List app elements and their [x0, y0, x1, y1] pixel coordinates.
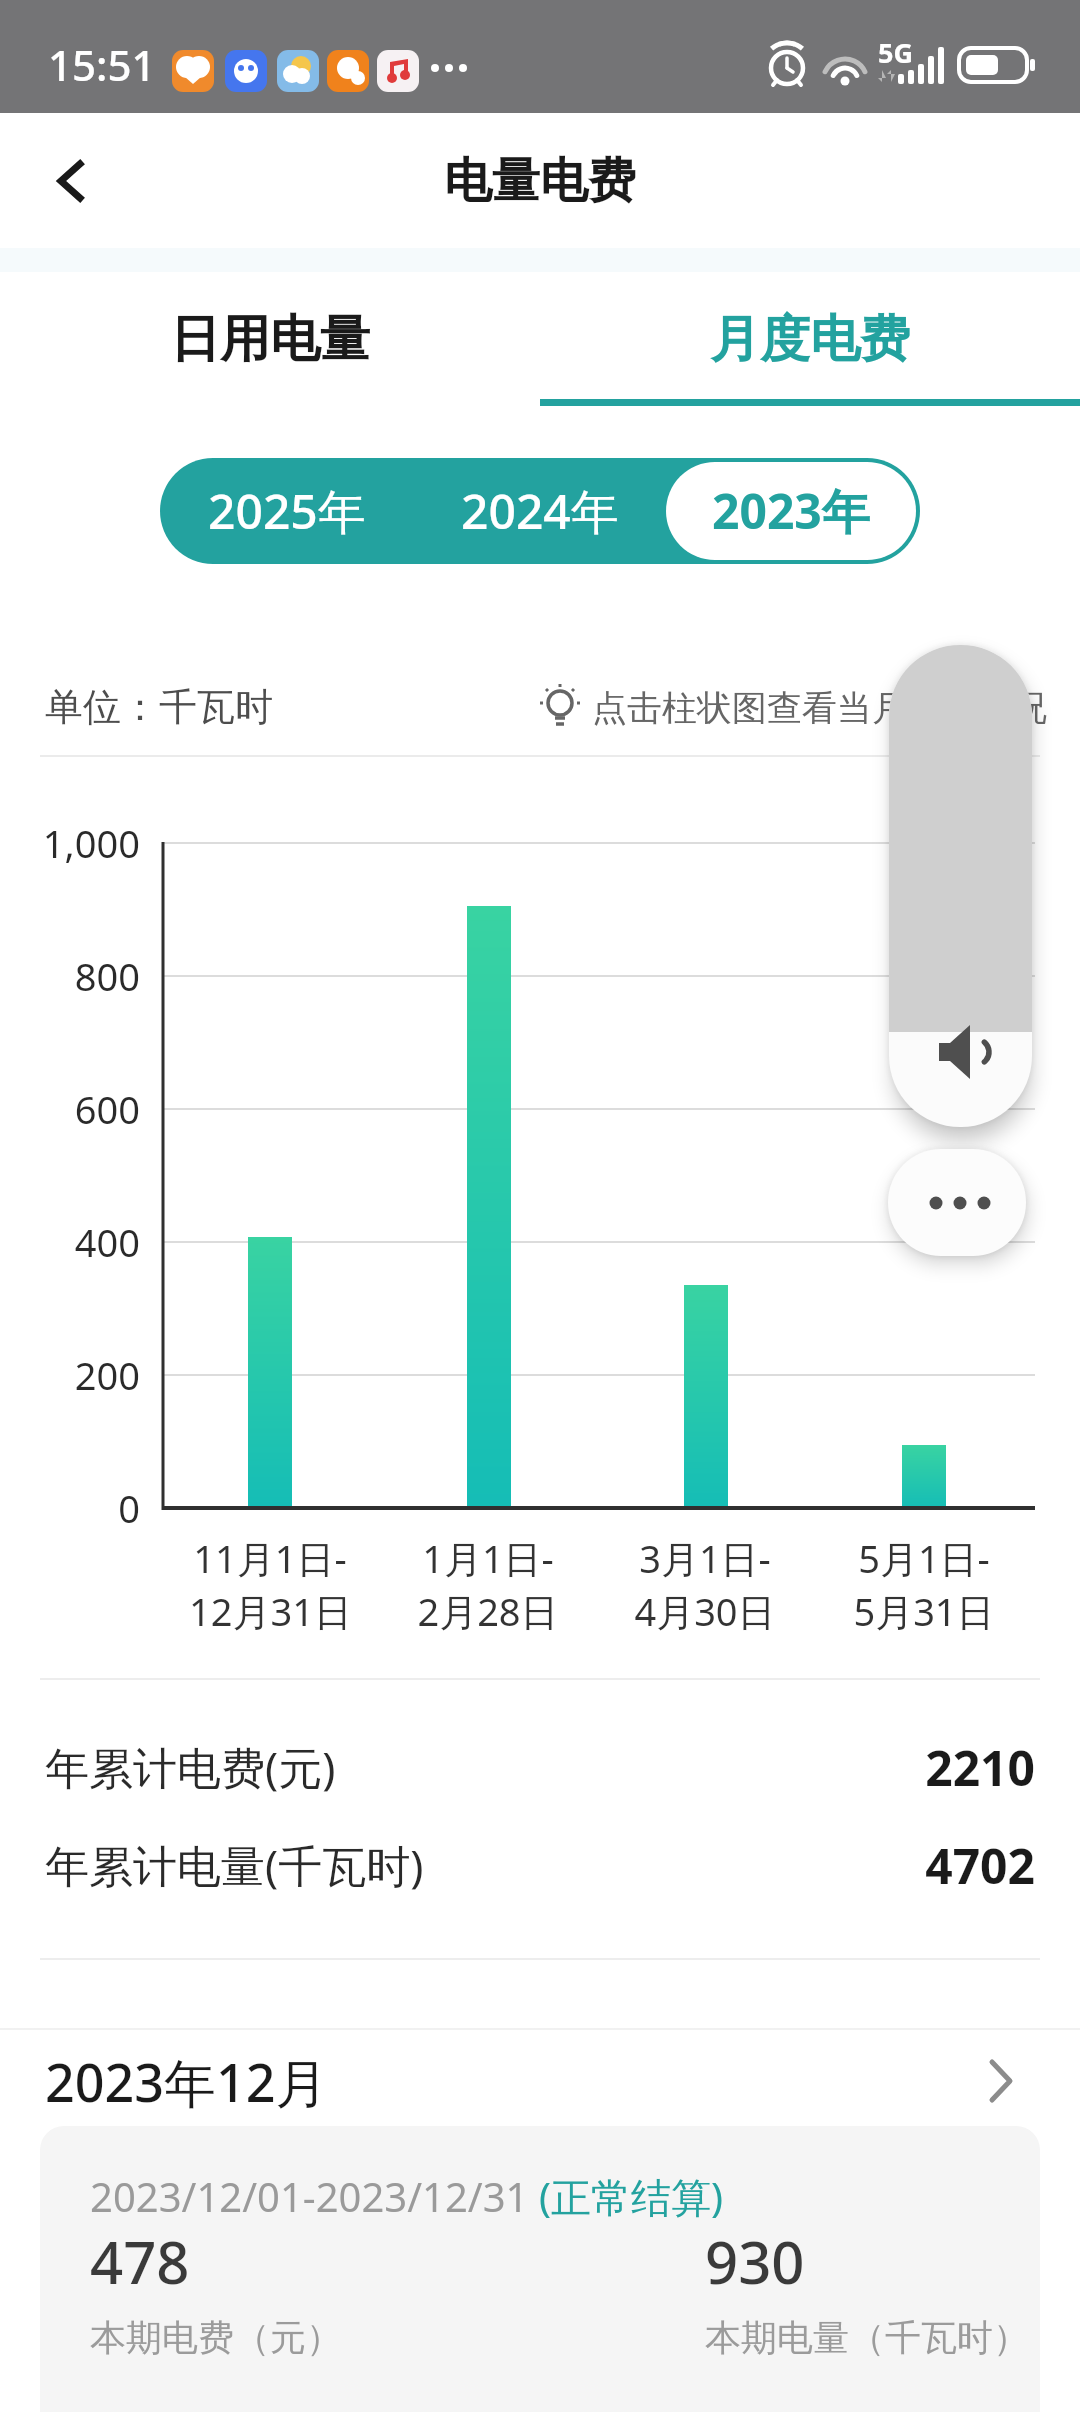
staticText: 4702	[0, 1833, 1035, 1898]
staticText: 800	[0, 950, 140, 1002]
button[interactable]: 日用电量	[0, 272, 540, 406]
staticText: 2023/12/01-2023/12/31	[90, 2169, 539, 2223]
staticText: 1,000	[0, 817, 140, 869]
staticText: 1月1日-	[422, 1532, 554, 1584]
staticText: 11月1日-	[193, 1532, 347, 1584]
staticText: 5月31日	[853, 1585, 995, 1637]
staticText: 930	[705, 2222, 805, 2301]
staticText: (正常结算)	[539, 2169, 723, 2224]
staticText: 478	[90, 2222, 190, 2301]
staticText: 2023年12月	[45, 2046, 328, 2117]
button[interactable]: 2023年	[666, 462, 916, 560]
staticText: 本期电量（千瓦时）	[705, 2315, 1029, 2360]
staticText: 4月30日	[634, 1585, 776, 1637]
staticText: 12月31日	[189, 1585, 352, 1637]
button[interactable]	[889, 645, 1032, 1127]
staticText: 3月1日-	[639, 1532, 771, 1584]
staticText: 400	[0, 1216, 140, 1268]
staticText: 月度电费	[710, 308, 910, 371]
staticText: 2023年	[712, 478, 870, 544]
staticText: 2025年	[208, 478, 366, 544]
button[interactable]: 2025年	[160, 458, 413, 564]
staticText: 点击柱状图查看当月电费情况	[592, 686, 1047, 730]
staticText: 200	[0, 1349, 140, 1401]
button[interactable]: 2024年	[413, 458, 666, 564]
staticText: 0	[0, 1482, 140, 1534]
button[interactable]: 2023年12月	[0, 2030, 1080, 2130]
button[interactable]: 2023/12/01-2023/12/31	[40, 2126, 1040, 2412]
staticText: 600	[0, 1083, 140, 1135]
staticText: 日用电量	[170, 308, 370, 371]
button[interactable]: 月度电费	[540, 272, 1080, 406]
staticText: 年累计电费(元)	[45, 1737, 336, 1797]
staticText: 本期电费（元）	[90, 2315, 342, 2360]
staticText: 2月28日	[417, 1585, 559, 1637]
staticText: 单位：千瓦时	[45, 683, 273, 731]
staticText: 年累计电量(千瓦时)	[45, 1835, 424, 1895]
staticText: 电量电费	[0, 151, 1080, 211]
button[interactable]	[888, 1149, 1026, 1256]
staticText: 2024年	[461, 478, 619, 544]
staticText: 5G	[878, 34, 913, 71]
staticText: 5月1日-	[858, 1532, 990, 1584]
staticText: 2210	[0, 1735, 1035, 1800]
staticText: 15:51	[48, 36, 156, 93]
button[interactable]	[30, 143, 110, 218]
